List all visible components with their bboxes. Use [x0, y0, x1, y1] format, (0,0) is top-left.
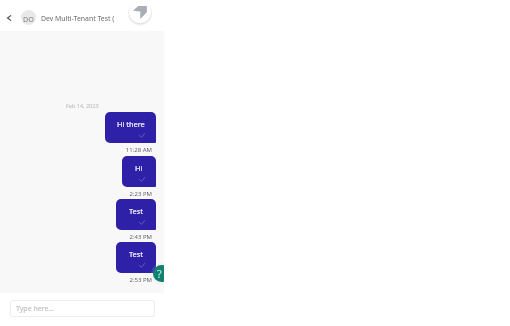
staticText: Test: [129, 206, 143, 216]
staticText: DO: [23, 14, 34, 24]
staticText: Test: [129, 249, 143, 259]
button[interactable]: DO: [21, 10, 36, 25]
staticText: 2:53 PM: [100, 276, 152, 284]
staticText: Hi: [135, 163, 143, 173]
staticText: 11:28 AM: [100, 146, 152, 154]
staticText: 2:23 PM: [100, 190, 152, 198]
staticText: Feb 14, 2023: [66, 102, 99, 109]
staticText: ?: [157, 266, 162, 281]
staticText: 2:43 PM: [100, 233, 152, 241]
button[interactable]: Back: [2, 11, 16, 25]
button[interactable]: Hi: [122, 156, 156, 187]
button[interactable]: Help: [151, 263, 164, 284]
button[interactable]: Test: [116, 242, 156, 273]
button[interactable]: Test: [116, 199, 156, 230]
button[interactable]: Type here...: [10, 300, 155, 317]
staticText: Dev Multi-Tenant Test (: [41, 14, 115, 23]
staticText: Type here...: [16, 304, 54, 314]
button[interactable]: Share: [128, 0, 152, 24]
staticText: Hi there: [117, 119, 145, 129]
button[interactable]: Hi there: [105, 112, 156, 143]
